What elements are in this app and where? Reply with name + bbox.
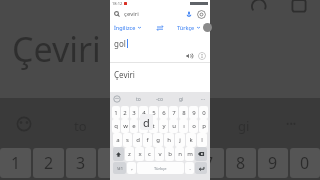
- button[interactable]: ı: [179, 119, 188, 133]
- staticText: z: [128, 150, 131, 158]
- button[interactable]: İngilizce: [114, 21, 155, 34]
- staticText: m: [187, 150, 193, 158]
- staticText: g: [156, 136, 160, 144]
- button[interactable]: .: [185, 162, 194, 174]
- button[interactable]: j: [175, 133, 185, 147]
- button[interactable]: 2: [121, 106, 129, 119]
- button[interactable]: a: [113, 133, 122, 147]
- button[interactable]: k: [186, 133, 196, 147]
- staticText: d: [143, 115, 150, 130]
- button[interactable]: m: [185, 147, 194, 161]
- staticText: 9: [268, 152, 278, 174]
- staticText: y: [162, 122, 166, 130]
- button[interactable]: Voice search: [185, 10, 193, 18]
- button[interactable]: 0: [199, 106, 208, 119]
- button[interactable]: More suggestions: [199, 95, 207, 103]
- button[interactable]: Google Lens: [197, 10, 206, 19]
- button[interactable]: 5: [149, 106, 158, 119]
- button[interactable]: q: [112, 119, 120, 133]
- button[interactable]: Türkçe: [165, 21, 206, 34]
- staticText: gol: [114, 38, 126, 49]
- staticText: 3: [76, 152, 86, 174]
- staticText: to: [74, 117, 87, 135]
- button[interactable]: More options: [198, 52, 206, 60]
- button[interactable]: Emoji: [113, 95, 121, 103]
- button[interactable]: 1: [112, 106, 120, 119]
- staticText: ı: [183, 122, 185, 130]
- button[interactable]: d: [133, 133, 142, 147]
- staticText: 3: [132, 109, 136, 117]
- button[interactable]: s: [123, 133, 132, 147]
- button[interactable]: v: [155, 147, 164, 161]
- button[interactable]: c: [145, 147, 154, 161]
- staticText: q: [114, 122, 118, 130]
- staticText: Türkçe: [154, 166, 167, 171]
- button[interactable]: Swap languages: [155, 23, 165, 33]
- staticText: ,: [131, 164, 133, 172]
- button[interactable]: x: [135, 147, 144, 161]
- button[interactable]: Çeviri: [110, 63, 210, 91]
- button[interactable]: l: [197, 133, 207, 147]
- button[interactable]: Backspace: [195, 147, 207, 161]
- staticText: 4: [142, 109, 146, 117]
- button[interactable]: 9: [189, 106, 198, 119]
- staticText: 8: [236, 152, 246, 174]
- button[interactable]: w: [121, 119, 129, 133]
- button[interactable]: o: [189, 119, 198, 133]
- staticText: s: [126, 136, 129, 144]
- button[interactable]: y: [159, 119, 168, 133]
- button[interactable]: e: [130, 119, 138, 133]
- staticText: -co: [156, 96, 164, 103]
- button[interactable]: 6: [159, 106, 168, 119]
- staticText: 9: [192, 109, 196, 117]
- button[interactable]: 4: [139, 106, 148, 119]
- button[interactable]: 3: [130, 106, 138, 119]
- button[interactable]: Listen: [185, 52, 193, 60]
- button[interactable]: b: [165, 147, 174, 161]
- button[interactable]: 7: [169, 106, 178, 119]
- button[interactable]: Enter: [195, 162, 207, 174]
- staticText: Türkçe: [177, 24, 195, 31]
- staticText: 5: [152, 109, 156, 117]
- staticText: gi: [179, 96, 184, 103]
- other: Search: [114, 11, 120, 17]
- staticText: c: [148, 150, 151, 158]
- staticText: 7: [172, 109, 176, 117]
- button[interactable]: p: [199, 119, 208, 133]
- staticText: j: [179, 136, 181, 144]
- button[interactable]: ,: [127, 162, 136, 174]
- button[interactable]: g: [153, 133, 163, 147]
- button[interactable]: f: [143, 133, 152, 147]
- staticText: ···: [201, 96, 206, 103]
- button[interactable]: Symbols: [113, 162, 126, 174]
- staticText: f: [146, 136, 149, 144]
- staticText: to: [136, 96, 141, 103]
- button[interactable]: t: [149, 119, 158, 133]
- staticText: k: [189, 136, 193, 144]
- staticText: 2: [123, 109, 127, 117]
- button[interactable]: Shift: [113, 147, 124, 161]
- button[interactable]: Türkçe: [137, 162, 184, 174]
- staticText: !#1: [117, 166, 123, 171]
- button[interactable]: n: [175, 147, 184, 161]
- button[interactable]: r: [139, 119, 148, 133]
- staticText: d: [136, 136, 140, 144]
- staticText: 2: [44, 152, 54, 174]
- staticText: r: [142, 122, 145, 130]
- staticText: 18:12: [112, 1, 123, 6]
- button[interactable]: h: [164, 133, 174, 147]
- staticText: n: [178, 150, 182, 158]
- button[interactable]: Search: [110, 7, 210, 21]
- staticText: gi: [238, 117, 250, 135]
- staticText: v: [158, 150, 162, 158]
- staticText: w: [123, 122, 128, 130]
- staticText: a: [116, 136, 120, 144]
- button[interactable]: u: [169, 119, 178, 133]
- staticText: b: [168, 150, 172, 158]
- button[interactable]: z: [125, 147, 134, 161]
- staticText: 0: [202, 109, 206, 117]
- button[interactable]: 8: [179, 106, 188, 119]
- staticText: 1: [114, 109, 118, 117]
- staticText: u: [172, 122, 176, 130]
